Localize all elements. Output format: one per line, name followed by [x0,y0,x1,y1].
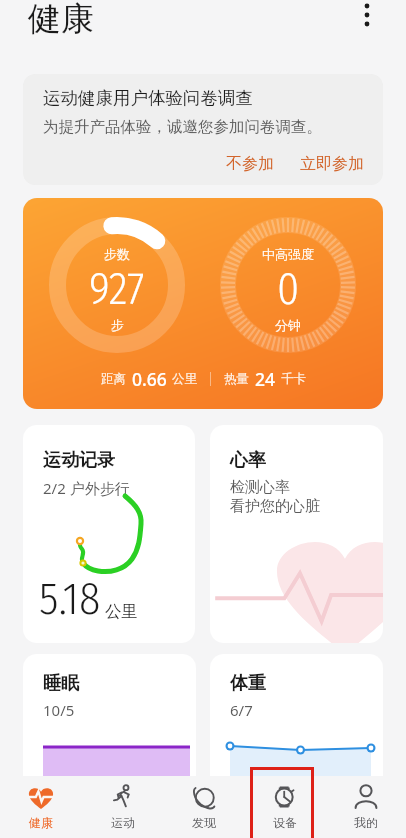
button[interactable]: 心率 [210,425,383,643]
button[interactable]: 我的 [325,776,406,838]
staticText: 运动 [111,815,135,830]
staticText: 运动记录 [43,449,115,472]
button[interactable]: 不参加 [223,150,277,178]
button[interactable]: 运动健康用户体验问卷调查 [23,74,383,185]
staticText: 中高强度 [262,246,314,262]
button[interactable]: 体重 [210,654,383,814]
button[interactable]: 健康 [0,776,82,838]
staticText: 检测心率 [230,478,290,497]
staticText: 立即参加 [300,154,364,174]
button[interactable]: 步数 [23,198,383,409]
staticText: 6/7 [230,700,253,720]
button[interactable]: 发现 [163,776,244,838]
staticText: 分钟 [275,317,301,333]
staticText: 不参加 [226,154,274,174]
staticText: 心率 [230,449,266,472]
staticText: 5.18 [39,573,101,626]
staticText: 千卡 [281,371,306,387]
button[interactable]: More options [353,2,381,30]
button[interactable]: 运动 [82,776,163,838]
staticText: 927 [89,263,145,316]
staticText: 2/2 户外步行 [43,478,130,498]
staticText: 公里 [105,601,138,622]
staticText: 我的 [354,815,378,830]
button[interactable]: 运动记录 [23,425,195,643]
button[interactable]: 立即参加 [297,150,367,178]
staticText: 睡眠 [43,672,79,695]
staticText: 步数 [104,246,130,262]
staticText: 为提升产品体验，诚邀您参加问卷调查。 [43,117,322,137]
button[interactable]: 睡眠 [23,654,196,814]
staticText: 0.66 [132,367,167,391]
staticText: 运动健康用户体验问卷调查 [43,87,253,109]
staticText: 0 [277,263,300,316]
staticText: 步 [111,317,124,333]
button[interactable]: 设备 [244,776,325,838]
staticText: 体重 [230,672,266,695]
staticText: 看护您的心脏 [230,497,320,516]
staticText: 10/5 [43,700,75,720]
staticText: 热量 [224,371,249,387]
staticText: 24 [255,367,276,391]
staticText: 健康 [29,815,53,830]
staticText: 健康 [28,0,94,40]
staticText: 设备 [273,815,297,830]
staticText: 发现 [192,815,216,830]
staticText: 公里 [172,371,197,387]
staticText: 距离 [101,371,126,387]
